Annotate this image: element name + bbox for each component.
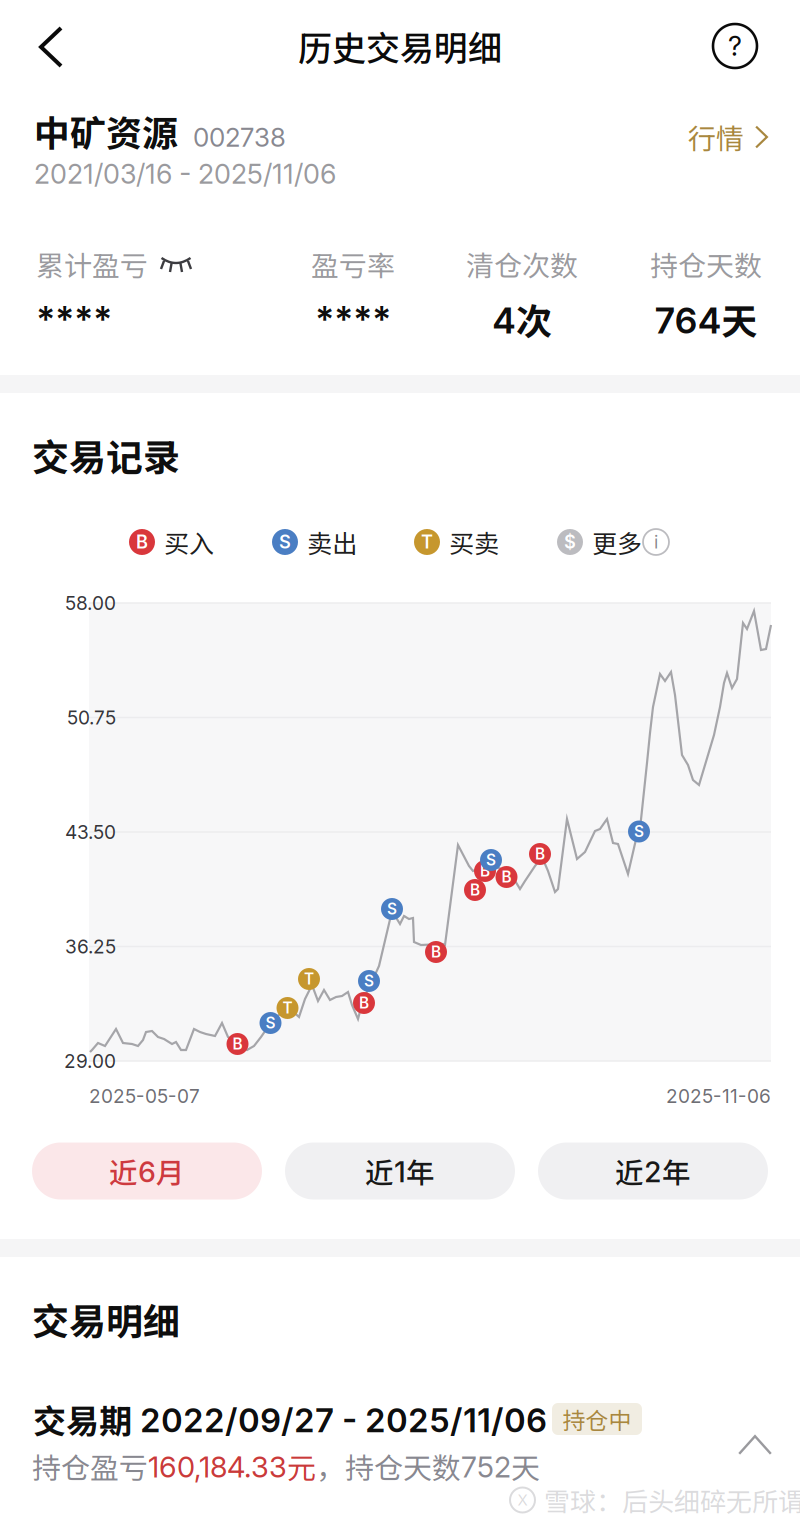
staticText: 58.00 xyxy=(65,591,116,614)
staticText: T xyxy=(421,531,433,553)
staticText: S xyxy=(387,900,397,918)
staticText: B xyxy=(535,845,545,863)
staticText: 更多 xyxy=(592,524,642,560)
staticText: 160,184.33元 xyxy=(148,1445,316,1487)
staticText: 中矿资源 xyxy=(34,105,178,157)
staticText: 近2年 xyxy=(615,1150,691,1192)
staticText: 002738 xyxy=(193,121,286,153)
staticText: 持仓盈亏 xyxy=(32,1445,148,1487)
staticText: $ xyxy=(564,531,576,553)
staticText: 2021/03/16 - 2025/11/06 xyxy=(34,158,336,190)
button[interactable]: Collapse xyxy=(720,1415,790,1475)
staticText: 行情 xyxy=(688,117,744,157)
staticText: 持仓天数 xyxy=(650,244,762,284)
staticText: T xyxy=(304,970,314,988)
staticText: **** xyxy=(315,297,391,341)
staticText: 50.75 xyxy=(67,706,116,729)
staticText: S xyxy=(486,851,496,869)
staticText: 2025-05-07 xyxy=(89,1084,200,1107)
staticText: X xyxy=(517,1491,527,1509)
staticText: ，持仓天数752天 xyxy=(316,1445,540,1487)
staticText: B xyxy=(232,1035,242,1053)
button[interactable]: 近6月 xyxy=(32,1142,262,1199)
staticText: B xyxy=(470,881,480,899)
button[interactable]: 近1年 xyxy=(285,1142,515,1199)
staticText: 近6月 xyxy=(109,1150,185,1192)
staticText: S xyxy=(279,531,291,553)
staticText: 持仓中 xyxy=(562,1402,631,1436)
staticText: 29.00 xyxy=(64,1049,116,1072)
staticText: B xyxy=(501,868,511,886)
staticText: 买卖 xyxy=(449,524,499,560)
staticText: 卖出 xyxy=(307,524,357,560)
staticText: **** xyxy=(36,297,112,341)
staticText: 43.50 xyxy=(65,820,116,843)
staticText: 交易期 2022/09/27 - 2025/11/06 xyxy=(33,1395,547,1443)
button[interactable]: 行情 xyxy=(638,112,768,162)
staticText: 累计盈亏 xyxy=(36,244,148,284)
staticText: 近1年 xyxy=(365,1150,435,1192)
staticText: 雪球：后头细碎无所谓 xyxy=(544,1481,800,1519)
staticText: 盈亏率 xyxy=(311,244,395,284)
staticText: 历史交易明细 xyxy=(298,21,502,71)
staticText: 36.25 xyxy=(65,935,116,958)
staticText: 764天 xyxy=(654,293,757,345)
staticText: 2025-11-06 xyxy=(666,1084,771,1107)
staticText: B xyxy=(136,531,148,553)
staticText: 买入 xyxy=(164,524,214,560)
staticText: i xyxy=(654,531,658,553)
staticText: S xyxy=(265,1014,275,1032)
staticText: 清仓次数 xyxy=(466,244,578,284)
staticText: S xyxy=(634,822,644,841)
staticText: ? xyxy=(728,30,742,62)
staticText: 交易明细 xyxy=(32,1292,180,1346)
button[interactable]: Help xyxy=(700,11,770,81)
button[interactable]: Back xyxy=(14,10,88,84)
staticText: B xyxy=(431,943,441,961)
staticText: 交易记录 xyxy=(32,428,180,482)
staticText: S xyxy=(364,972,374,990)
staticText: T xyxy=(282,999,292,1017)
staticText: B xyxy=(480,862,490,880)
button[interactable]: 近2年 xyxy=(538,1142,768,1199)
staticText: 4次 xyxy=(492,293,552,345)
staticText: B xyxy=(359,994,369,1012)
